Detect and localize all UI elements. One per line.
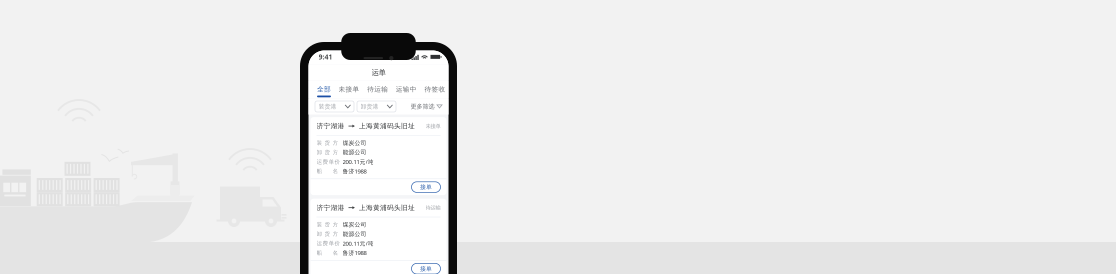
- staticText: 货: [324, 139, 330, 147]
- staticText: 运: [316, 158, 322, 165]
- staticText: 运单: [371, 68, 385, 77]
- button[interactable]: 济宁湖港: [310, 199, 446, 274]
- staticText: 卸货港: [360, 103, 378, 110]
- staticText: 接单: [420, 183, 432, 191]
- staticText: 方: [332, 230, 338, 238]
- staticText: 方: [332, 139, 338, 147]
- staticText: 9:41: [318, 52, 332, 61]
- staticText: 价: [334, 158, 340, 165]
- button[interactable]: 接单: [411, 263, 440, 274]
- staticText: 待签收: [424, 85, 445, 93]
- staticText: 名: [332, 249, 338, 256]
- staticText: 200.11元/吨: [342, 239, 373, 247]
- staticText: 装货港: [318, 103, 336, 110]
- staticText: 装: [316, 221, 322, 228]
- staticText: 接单: [420, 265, 432, 272]
- staticText: 装: [316, 139, 322, 147]
- staticText: 货: [324, 149, 330, 156]
- staticText: 卸: [316, 230, 322, 238]
- staticText: 货: [324, 221, 330, 228]
- button[interactable]: 装货港: [315, 101, 354, 112]
- staticText: 未接单: [425, 123, 440, 129]
- button[interactable]: 运输中: [396, 80, 417, 98]
- staticText: 待运输: [425, 204, 440, 211]
- staticText: 方: [332, 221, 338, 228]
- staticText: 煤炭公司: [342, 139, 366, 147]
- staticText: 费: [322, 240, 328, 247]
- staticText: 济宁湖港: [316, 203, 344, 212]
- staticText: 待付款: [453, 85, 474, 93]
- button[interactable]: 全部: [317, 80, 331, 98]
- staticText: 名: [332, 168, 338, 175]
- staticText: 船: [316, 168, 322, 175]
- staticText: 单: [328, 158, 334, 165]
- button[interactable]: 未接单: [339, 80, 360, 98]
- staticText: 价: [334, 240, 340, 247]
- staticText: 货: [324, 230, 330, 238]
- staticText: 上海黄浦码头旧址: [359, 203, 415, 212]
- staticText: 鲁济1988: [342, 249, 366, 257]
- staticText: 运输中: [396, 85, 417, 93]
- staticText: 200.11元/吨: [342, 158, 373, 166]
- staticText: 鲁济1988: [342, 167, 366, 175]
- staticText: 单: [328, 240, 334, 247]
- staticText: 方: [332, 149, 338, 156]
- button[interactable]: 接单: [411, 182, 440, 192]
- staticText: 待运输: [367, 85, 388, 93]
- staticText: 船: [316, 249, 322, 256]
- staticText: 煤炭公司: [342, 221, 366, 228]
- staticText: 能源公司: [342, 230, 366, 238]
- staticText: 济宁湖港: [316, 122, 344, 130]
- staticText: 费: [322, 158, 328, 165]
- button[interactable]: 济宁湖港: [310, 117, 446, 195]
- button[interactable]: 更多筛选: [410, 98, 442, 114]
- staticText: 更多筛选: [410, 103, 434, 110]
- staticText: 全部: [317, 85, 331, 93]
- staticText: 上海黄浦码头旧址: [359, 122, 415, 130]
- staticText: 运: [316, 240, 322, 247]
- button[interactable]: 待运输: [367, 80, 388, 98]
- staticText: 卸: [316, 149, 322, 156]
- button[interactable]: 待付款: [453, 80, 474, 98]
- staticText: 能源公司: [342, 149, 366, 156]
- button[interactable]: 待签收: [424, 80, 445, 98]
- staticText: 未接单: [339, 85, 360, 93]
- button[interactable]: 卸货港: [357, 101, 396, 112]
